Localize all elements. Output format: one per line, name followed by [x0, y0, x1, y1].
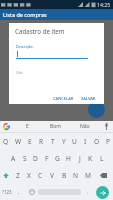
staticText: Descrição:	[16, 44, 34, 49]
staticText: ?123	[2, 189, 12, 195]
button[interactable]: U	[69, 133, 80, 150]
staticText: C	[38, 171, 43, 180]
button[interactable]: L	[96, 150, 107, 167]
button[interactable]: M	[82, 167, 94, 184]
staticText: X	[27, 171, 31, 180]
button[interactable]: H	[63, 150, 74, 167]
staticText: Z	[16, 171, 20, 180]
staticText: W	[15, 137, 22, 146]
button[interactable]: R	[36, 133, 47, 150]
button[interactable]: P	[102, 133, 113, 150]
staticText: Qtd:	[16, 70, 24, 75]
button[interactable]: T	[47, 133, 58, 150]
staticText: CANCELAR	[53, 96, 74, 101]
button[interactable]: SALVAR	[79, 96, 98, 101]
staticText: E	[28, 137, 32, 146]
button[interactable]: J	[74, 150, 85, 167]
staticText: V	[50, 171, 54, 180]
button[interactable]: Y	[58, 133, 69, 150]
staticText: Bom	[50, 123, 61, 130]
staticText: G	[55, 154, 60, 163]
button[interactable]: .	[81, 184, 94, 200]
button[interactable]: G	[52, 150, 63, 167]
staticText: S	[23, 154, 27, 163]
staticText: 14:25	[97, 1, 111, 8]
staticText: Lista de compras	[3, 11, 47, 18]
button[interactable]: N	[70, 167, 82, 184]
button[interactable]: Z	[12, 167, 23, 184]
button[interactable]: K	[85, 150, 96, 167]
button[interactable]: W	[12, 133, 24, 150]
button[interactable]: Voice input	[99, 121, 113, 132]
button[interactable]: CANCELAR	[51, 96, 76, 101]
button[interactable]: X	[23, 167, 34, 184]
staticText: L	[100, 154, 104, 163]
staticText: Cadastro de item	[15, 27, 65, 35]
staticText: P	[106, 137, 110, 146]
staticText: D	[33, 154, 38, 163]
staticText: SALVAR	[81, 96, 96, 101]
button[interactable]: F	[41, 150, 52, 167]
staticText: H	[66, 154, 71, 163]
staticText: N	[73, 171, 79, 180]
staticText: M	[85, 171, 91, 180]
button[interactable]: Q	[0, 133, 12, 150]
staticText: ,	[18, 189, 20, 196]
staticText: F	[45, 154, 49, 163]
button[interactable]: E	[13, 121, 41, 132]
staticText: A	[11, 154, 16, 163]
button[interactable]: B	[58, 167, 70, 184]
staticText: Não	[80, 123, 90, 130]
staticText: E	[26, 123, 29, 130]
button[interactable]: E	[24, 133, 36, 150]
button[interactable]: Shift	[0, 167, 12, 184]
button[interactable]: ,	[13, 184, 25, 200]
staticText: I	[84, 137, 87, 146]
button[interactable]: S	[19, 150, 30, 167]
staticText: Q	[3, 137, 9, 146]
button[interactable]: Enter	[96, 186, 109, 199]
button[interactable]: ?123	[0, 184, 13, 200]
button[interactable]: Emoji	[25, 184, 38, 200]
staticText: U	[72, 137, 77, 146]
button[interactable]: C	[34, 167, 46, 184]
button[interactable]: A	[7, 150, 19, 167]
staticText: B	[62, 171, 67, 180]
button[interactable]: Não	[70, 121, 99, 132]
button[interactable]: Bom	[41, 121, 70, 132]
button[interactable]: Adicionar item	[88, 101, 105, 118]
staticText: Y	[62, 137, 66, 146]
staticText: T	[51, 137, 55, 146]
button[interactable]: Google	[0, 121, 13, 132]
staticText: O	[94, 137, 100, 146]
button[interactable]: V	[46, 167, 58, 184]
staticText: .	[87, 189, 89, 196]
button[interactable]: Backspace	[94, 167, 113, 184]
button[interactable]: I	[80, 133, 91, 150]
staticText: J	[79, 154, 81, 163]
button[interactable]: O	[91, 133, 102, 150]
staticText: K	[88, 154, 93, 163]
button[interactable]: D	[30, 150, 41, 167]
staticText: R	[39, 137, 44, 146]
